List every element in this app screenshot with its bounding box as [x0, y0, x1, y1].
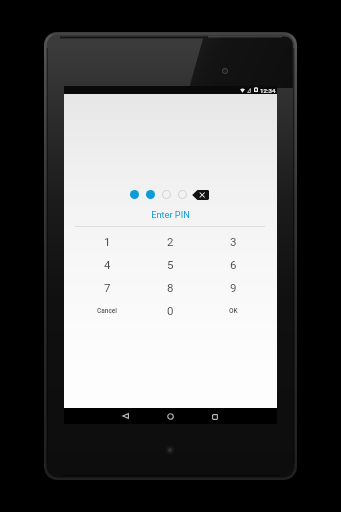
- button[interactable]: 4: [75, 253, 139, 276]
- staticText: Enter PIN: [64, 209, 277, 220]
- button[interactable]: 2: [139, 230, 202, 253]
- button[interactable]: 8: [139, 276, 202, 299]
- button[interactable]: OK: [202, 299, 265, 322]
- staticText: 5: [167, 258, 174, 271]
- button[interactable]: 9: [202, 276, 265, 299]
- staticText: 0: [167, 304, 174, 317]
- button[interactable]: 0: [139, 299, 202, 322]
- button[interactable]: 5: [139, 253, 202, 276]
- staticText: 7: [104, 281, 111, 294]
- staticText: 8: [167, 281, 174, 294]
- staticText: 6: [230, 258, 237, 271]
- staticText: OK: [229, 307, 238, 315]
- staticText: 9: [230, 281, 237, 294]
- button[interactable]: Cancel: [75, 299, 139, 322]
- staticText: 3: [230, 235, 237, 248]
- button[interactable]: Back: [118, 409, 132, 423]
- button[interactable]: 6: [202, 253, 265, 276]
- button[interactable]: 1: [75, 230, 139, 253]
- staticText: Cancel: [97, 307, 117, 315]
- button[interactable]: 7: [75, 276, 139, 299]
- button[interactable]: 3: [202, 230, 265, 253]
- staticText: 2: [167, 235, 174, 248]
- button[interactable]: Home: [163, 409, 177, 423]
- staticText: 1: [104, 235, 111, 248]
- staticText: 4: [104, 258, 111, 271]
- button[interactable]: Recent apps: [208, 410, 222, 424]
- staticText: 12:34: [260, 87, 276, 94]
- button[interactable]: Delete: [192, 190, 209, 200]
